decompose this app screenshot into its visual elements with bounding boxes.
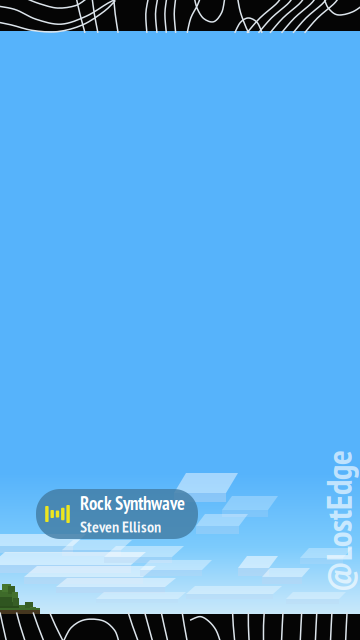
staticText: Rock Synthwave — [80, 491, 185, 515]
button[interactable]: Rock Synthwave — [36, 489, 198, 539]
staticText: @LostEdge — [269, 500, 360, 544]
staticText: Steven Ellison — [80, 516, 161, 537]
